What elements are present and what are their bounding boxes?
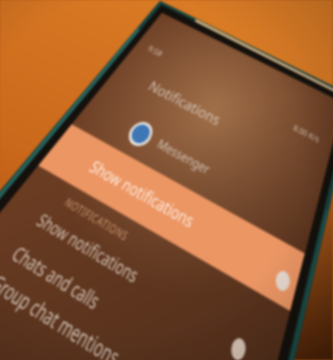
button[interactable]: Notifications settings — [0, 0, 333, 360]
